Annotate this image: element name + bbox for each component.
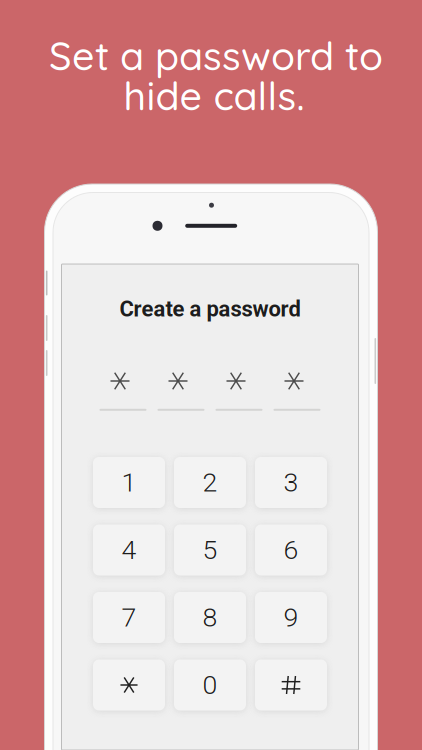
- staticText: 1: [121, 467, 136, 498]
- staticText: 0: [202, 669, 217, 701]
- button[interactable]: 3: [255, 457, 327, 508]
- button[interactable]: 7: [93, 592, 165, 643]
- staticText: Create a password: [119, 296, 300, 322]
- button[interactable]: 8: [174, 592, 246, 643]
- button[interactable]: 9: [255, 592, 327, 643]
- button[interactable]: 6: [255, 524, 327, 575]
- button[interactable]: 5: [174, 524, 246, 575]
- button[interactable]: [93, 659, 165, 710]
- staticText: 3: [283, 467, 298, 498]
- staticText: 9: [283, 602, 298, 633]
- staticText: 8: [202, 602, 217, 633]
- staticText: 5: [202, 534, 217, 566]
- button[interactable]: 1: [93, 457, 165, 508]
- button[interactable]: 4: [93, 524, 165, 575]
- staticText: 6: [283, 534, 298, 566]
- button[interactable]: 0: [174, 659, 246, 710]
- staticText: Set a password to: [49, 31, 383, 80]
- staticText: 7: [121, 602, 136, 633]
- staticText: hide calls.: [123, 71, 304, 120]
- staticText: 2: [202, 467, 217, 498]
- button[interactable]: 2: [174, 457, 246, 508]
- button[interactable]: [255, 659, 327, 710]
- staticText: 4: [121, 534, 136, 566]
